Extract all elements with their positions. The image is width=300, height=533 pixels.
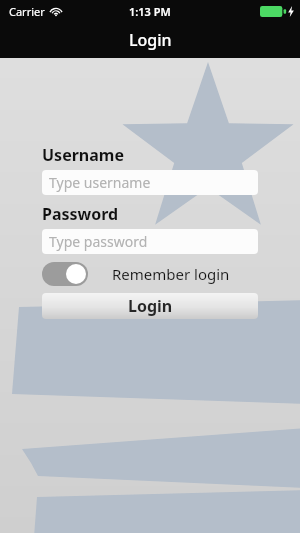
button[interactable]: Type username (42, 170, 258, 195)
staticText: Login (129, 29, 172, 51)
staticText: Login (128, 295, 173, 317)
staticText: 1:13 PM (129, 4, 171, 19)
button[interactable]: Remember login switch, on (42, 262, 88, 286)
staticText: Password (42, 203, 119, 225)
staticText: Username (42, 144, 124, 166)
staticText: Remember login (112, 264, 230, 284)
staticText: Type username (49, 173, 151, 192)
button[interactable]: Login (42, 293, 258, 319)
staticText: Type password (49, 232, 148, 251)
button[interactable]: Type password (42, 229, 258, 254)
staticText: Carrier (9, 4, 45, 19)
